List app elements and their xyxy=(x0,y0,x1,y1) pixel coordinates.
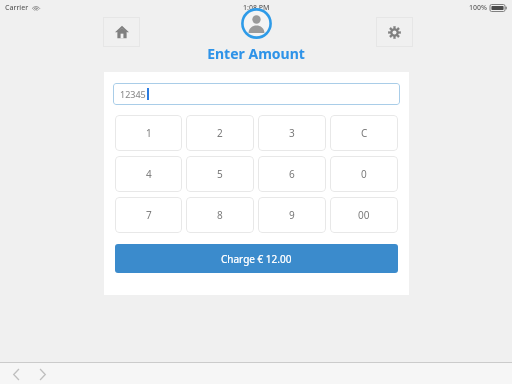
staticText: 9 xyxy=(289,208,295,222)
staticText: 2 xyxy=(217,126,223,140)
staticText: Enter Amount xyxy=(0,44,512,63)
button[interactable]: 12345 xyxy=(113,83,400,105)
button[interactable]: Settings xyxy=(376,17,413,47)
staticText: 5 xyxy=(217,167,223,181)
button[interactable]: 1 xyxy=(115,115,182,151)
button[interactable]: Forward xyxy=(33,365,51,383)
button[interactable]: 0 xyxy=(330,156,398,192)
staticText: 12345 xyxy=(120,88,146,100)
button[interactable]: 8 xyxy=(186,197,254,233)
button[interactable]: Back xyxy=(7,365,25,383)
staticText: Carrier xyxy=(5,3,29,13)
staticText: 4 xyxy=(146,167,152,181)
staticText: 1:08 PM xyxy=(243,3,270,13)
button[interactable]: Home xyxy=(103,17,140,47)
staticText: 00 xyxy=(358,208,370,222)
staticText: 8 xyxy=(217,208,223,222)
button[interactable]: 3 xyxy=(258,115,326,151)
staticText: 3 xyxy=(289,126,295,140)
button[interactable]: C xyxy=(330,115,398,151)
staticText: Charge € 12.00 xyxy=(221,252,292,266)
button[interactable]: 5 xyxy=(186,156,254,192)
button[interactable]: 6 xyxy=(258,156,326,192)
button[interactable]: Charge € 12.00 xyxy=(115,244,398,273)
staticText: C xyxy=(361,126,368,140)
staticText: 1 xyxy=(146,126,152,140)
staticText: 0 xyxy=(361,167,367,181)
staticText: 100% xyxy=(469,3,487,13)
button[interactable]: 7 xyxy=(115,197,182,233)
staticText: 7 xyxy=(146,208,152,222)
button[interactable]: 2 xyxy=(186,115,254,151)
button[interactable]: 9 xyxy=(258,197,326,233)
staticText: 6 xyxy=(289,167,295,181)
button[interactable]: 4 xyxy=(115,156,182,192)
button[interactable]: Profile xyxy=(241,8,272,39)
button[interactable]: 00 xyxy=(330,197,398,233)
